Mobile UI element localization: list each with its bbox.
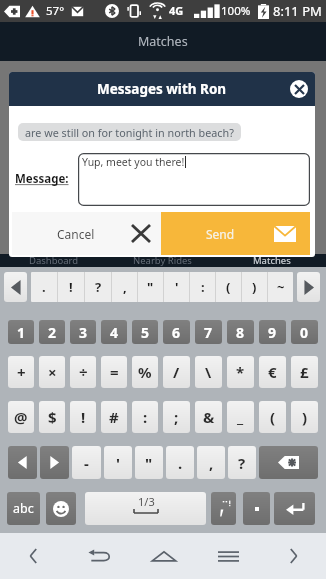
button[interactable] (211, 492, 236, 525)
button[interactable]: Nearby Rides (108, 254, 217, 267)
button[interactable]: Cancel (12, 212, 161, 255)
button[interactable]: ( (216, 272, 241, 302)
button[interactable]: Dashboard (0, 254, 108, 267)
button[interactable]: " (135, 446, 163, 479)
staticText: ) (302, 407, 308, 427)
button[interactable]: : (132, 401, 158, 433)
button[interactable]: Home (131, 533, 196, 579)
button[interactable]: Previous (0, 533, 66, 579)
button[interactable]: & (195, 401, 222, 433)
staticText: $ (48, 407, 57, 427)
staticText: £ (300, 362, 309, 382)
staticText: ) (252, 278, 257, 296)
button[interactable]: - (72, 446, 101, 479)
button[interactable]: ; (163, 401, 190, 433)
button[interactable]: ? (228, 446, 256, 479)
button[interactable]: # (101, 401, 127, 433)
button[interactable]: 0 (291, 320, 318, 344)
staticText: \ (205, 362, 212, 382)
button[interactable]: € (259, 356, 286, 388)
button[interactable]: 2 (39, 320, 65, 344)
staticText: 7 (204, 323, 213, 342)
staticText: 57° (46, 3, 65, 19)
staticText: _ (237, 407, 244, 427)
staticText: * (236, 362, 245, 382)
button[interactable]: * (227, 356, 254, 388)
button[interactable]: $ (39, 401, 65, 433)
staticText: Matches (253, 254, 291, 267)
button[interactable]: _ (227, 401, 254, 433)
button[interactable]: ? (85, 272, 111, 302)
staticText: 3 (79, 323, 88, 342)
button[interactable]: . (31, 272, 57, 302)
button[interactable]: 4 (101, 320, 127, 344)
staticText: 5 (141, 323, 150, 342)
button[interactable]: Space (85, 492, 206, 525)
staticText: ! (81, 407, 86, 427)
button[interactable]: 8 (227, 320, 254, 344)
button[interactable]: . (166, 446, 194, 479)
button[interactable]: / (163, 356, 190, 388)
button[interactable]: abc (7, 492, 40, 525)
button[interactable]: Matches (217, 254, 326, 267)
button[interactable]: \ (195, 356, 222, 388)
button[interactable]: 7 (195, 320, 222, 344)
staticText: 4 (110, 323, 119, 342)
button[interactable]: ~ (268, 272, 293, 302)
button[interactable]: = (101, 356, 127, 388)
button[interactable] (243, 492, 270, 525)
button[interactable]: Recent apps (196, 533, 261, 579)
staticText: ' (175, 278, 179, 296)
staticText: ~ (277, 278, 285, 296)
button[interactable]: Move right (40, 446, 69, 479)
button[interactable]: ' (104, 446, 132, 479)
button[interactable]: @ (8, 401, 34, 433)
button[interactable]: 1 (8, 320, 34, 344)
staticText: 8:11 PM (273, 2, 322, 20)
button[interactable]: Backspace (259, 446, 318, 479)
button[interactable]: , (197, 446, 225, 479)
button[interactable]: ) (291, 401, 318, 433)
staticText: % (138, 362, 152, 382)
button[interactable]: 3 (70, 320, 96, 344)
button[interactable]: Emoji (46, 492, 76, 525)
staticText: are we still on for tonight in north bea… (25, 125, 234, 140)
staticText: = (110, 362, 119, 382)
button[interactable]: 9 (259, 320, 286, 344)
button[interactable]: ! (58, 272, 84, 302)
button[interactable]: 5 (132, 320, 158, 344)
button[interactable]: ) (242, 272, 267, 302)
staticText: 9 (268, 323, 277, 342)
staticText: " (145, 453, 153, 473)
staticText: ! (69, 278, 73, 296)
button[interactable]: , (112, 272, 137, 302)
button[interactable]: ( (259, 401, 286, 433)
button[interactable]: : (190, 272, 215, 302)
button[interactable]: 6 (163, 320, 190, 344)
staticText: ; (174, 407, 179, 427)
button[interactable]: ! (70, 401, 96, 433)
button[interactable]: Back (66, 533, 131, 579)
button[interactable]: Next (261, 533, 326, 579)
staticText: Matches (138, 33, 188, 50)
button[interactable]: Close (290, 80, 308, 98)
button[interactable]: Previous (4, 272, 27, 302)
button[interactable]: Next (297, 272, 320, 302)
button[interactable]: + (8, 356, 34, 388)
button[interactable]: " (138, 272, 163, 302)
staticText: , (123, 278, 127, 296)
button[interactable]: Move left (8, 446, 37, 479)
button[interactable]: £ (291, 356, 318, 388)
staticText: , (209, 453, 214, 473)
button[interactable]: ÷ (70, 356, 96, 388)
button[interactable]: % (132, 356, 158, 388)
button[interactable]: Enter (274, 492, 315, 525)
button[interactable]: × (39, 356, 65, 388)
staticText: & (203, 407, 215, 427)
staticText: × (48, 362, 57, 382)
button[interactable]: Send (161, 212, 310, 255)
staticText: 100% (221, 3, 251, 19)
staticText: € (268, 362, 277, 382)
button[interactable]: ' (164, 272, 189, 302)
staticText: 8 (236, 323, 245, 342)
